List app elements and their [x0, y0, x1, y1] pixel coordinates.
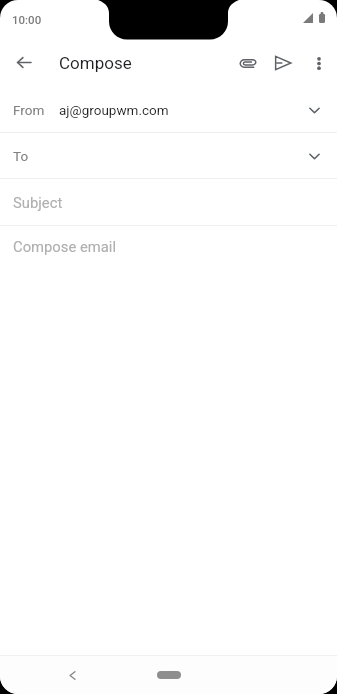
button[interactable]: Home [157, 671, 181, 679]
button[interactable]: From [0, 87, 337, 132]
button[interactable]: Expand [303, 99, 325, 121]
button[interactable]: Expand [303, 145, 325, 167]
staticText: 10:00 [12, 13, 42, 26]
button[interactable]: Compose email [0, 226, 337, 270]
staticText: From [13, 102, 45, 118]
staticText: Compose email [13, 238, 117, 255]
button[interactable]: Back [59, 662, 86, 689]
button[interactable]: Subject [0, 179, 337, 225]
staticText: aj@groupwm.com [59, 102, 169, 118]
staticText: Compose [59, 53, 132, 73]
staticText: Subject [13, 194, 63, 211]
button[interactable]: To [0, 133, 337, 178]
button[interactable]: Attach file [230, 41, 265, 85]
button[interactable]: Back [8, 47, 39, 78]
staticText: To [13, 148, 29, 164]
button[interactable]: Send [265, 41, 301, 85]
button[interactable]: More options [301, 41, 337, 85]
